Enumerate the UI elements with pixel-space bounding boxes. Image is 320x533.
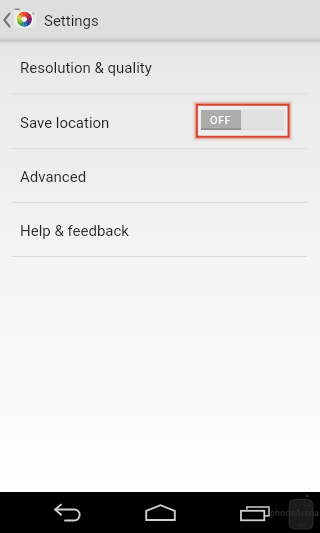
staticText: Settings <box>44 12 99 30</box>
button[interactable]: Navigate up <box>0 0 320 40</box>
button[interactable]: Advanced <box>0 149 320 202</box>
button[interactable]: Back <box>38 492 98 533</box>
button[interactable]: Save location <box>0 95 320 149</box>
staticText: OFF <box>210 114 232 127</box>
staticText: Advanced <box>20 168 87 186</box>
staticText: Help & feedback <box>20 222 129 240</box>
staticText: phoneArena <box>270 508 320 519</box>
staticText: Save location <box>20 114 110 132</box>
button[interactable]: Recent apps <box>236 495 276 527</box>
button[interactable]: Help & feedback <box>0 203 320 256</box>
staticText: Resolution & quality <box>20 59 152 77</box>
button[interactable]: Home <box>130 492 190 533</box>
button[interactable]: Resolution & quality <box>0 40 320 94</box>
button[interactable]: OFF <box>201 110 284 130</box>
